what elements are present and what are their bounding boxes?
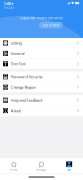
staticText: Log in for more services [20, 15, 63, 20]
staticText: Text Tool [11, 61, 26, 66]
staticText: About [11, 108, 21, 113]
button[interactable]: Setting [0, 38, 83, 48]
button[interactable]: Text Tool [0, 59, 83, 69]
button[interactable]: Change Region [0, 82, 83, 92]
staticText: General [11, 51, 25, 56]
staticText: Help and Feedback [11, 97, 43, 103]
staticText: Home [10, 168, 18, 171]
button[interactable]: Help and Feedback [0, 95, 83, 105]
button[interactable]: Message [28, 158, 55, 173]
staticText: Password Security [11, 74, 43, 79]
button[interactable]: Password Security [0, 72, 83, 82]
staticText: Change Region [11, 84, 36, 90]
button[interactable]: General [0, 48, 83, 58]
staticText: Setting [11, 40, 22, 46]
button[interactable]: About [0, 106, 83, 116]
button[interactable]: Me [55, 158, 83, 173]
staticText: Message [36, 168, 47, 171]
button[interactable]: Log in Now [39, 22, 63, 28]
staticText: Me [67, 168, 71, 172]
staticText: Log in Now [43, 23, 59, 27]
staticText: 1:48 [3, 1, 10, 6]
staticText: 1m 23s [3, 6, 13, 10]
button[interactable]: Home [0, 158, 28, 173]
